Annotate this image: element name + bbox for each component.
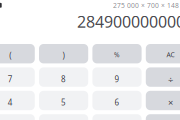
staticText: ) xyxy=(63,50,65,61)
button[interactable]: AC xyxy=(146,44,180,63)
staticText: 6 xyxy=(114,97,119,108)
staticText: 284900000000 xyxy=(77,11,180,32)
button[interactable]: 7 xyxy=(0,67,35,87)
staticText: 275 000 × 700 × 148 × 20 xyxy=(113,1,180,10)
staticText: 9 xyxy=(114,74,119,84)
staticText: % xyxy=(114,50,120,59)
staticText: × xyxy=(168,96,173,109)
button[interactable]: 8 xyxy=(39,67,88,87)
button[interactable]: − xyxy=(146,114,180,120)
button[interactable]: 4 xyxy=(0,91,35,110)
button[interactable]: History xyxy=(0,0,5,5)
button[interactable]: ) xyxy=(39,44,88,63)
staticText: ÷ xyxy=(168,73,173,85)
button[interactable]: 5 xyxy=(39,91,88,110)
button[interactable]: 9 xyxy=(92,67,142,87)
button[interactable]: ( xyxy=(0,44,35,63)
staticText: 4 xyxy=(8,97,13,108)
staticText: ( xyxy=(9,50,11,61)
button[interactable]: 6 xyxy=(92,91,142,110)
staticText: 7 xyxy=(8,74,13,84)
staticText: 5 xyxy=(61,97,66,108)
button[interactable]: ÷ xyxy=(146,67,180,87)
staticText: AC xyxy=(166,50,174,59)
staticText: 8 xyxy=(61,74,66,84)
button[interactable]: % xyxy=(92,44,142,63)
button[interactable]: × xyxy=(146,91,180,110)
